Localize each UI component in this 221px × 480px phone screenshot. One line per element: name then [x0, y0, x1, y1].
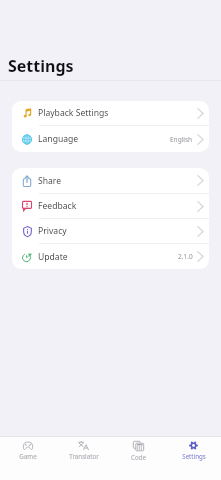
staticText: Translator: [69, 452, 99, 460]
staticText: Privacy: [38, 225, 67, 237]
staticText: Code: [131, 453, 146, 461]
button[interactable]: Code: [111, 437, 166, 464]
staticText: English: [170, 135, 193, 144]
button[interactable]: Game: [0, 437, 56, 463]
staticText: Share: [38, 175, 62, 187]
button[interactable]: Playback Settings: [12, 101, 209, 126]
button[interactable]: Privacy: [12, 219, 209, 244]
button[interactable]: Share: [12, 168, 209, 194]
button[interactable]: Feedback: [12, 194, 209, 219]
button[interactable]: Translator: [56, 437, 111, 463]
button[interactable]: Settings: [166, 437, 221, 463]
button[interactable]: Update: [12, 244, 209, 269]
staticText: Game: [19, 452, 37, 460]
staticText: Feedback: [38, 200, 77, 212]
staticText: Settings: [8, 55, 74, 77]
staticText: Settings: [182, 452, 206, 460]
button[interactable]: Language: [12, 126, 209, 152]
staticText: Playback Settings: [38, 107, 109, 119]
staticText: Language: [38, 133, 79, 145]
staticText: Update: [38, 251, 68, 263]
staticText: 2.1.0: [178, 252, 193, 261]
